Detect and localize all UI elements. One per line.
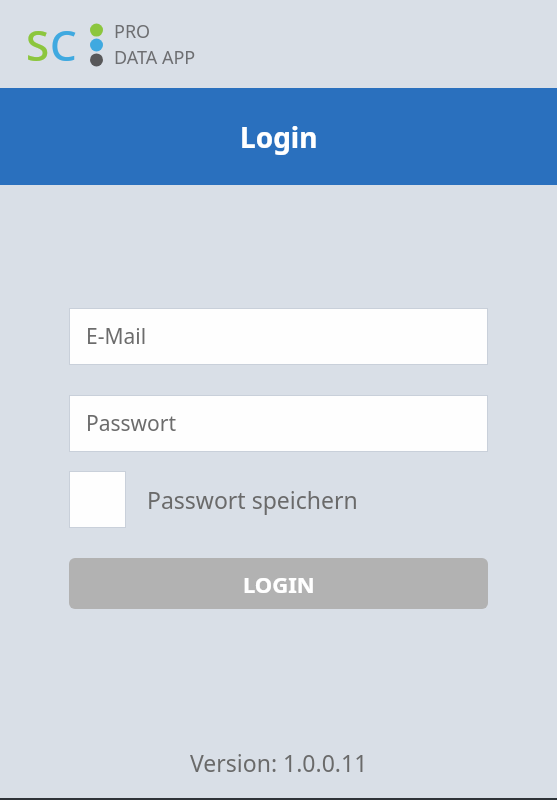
other: SC Pro Data App logo [26,16,196,73]
staticText: DATA APP [114,45,196,70]
button[interactable]: Passwort [69,395,488,452]
button[interactable]: LOGIN [69,558,488,609]
button[interactable]: Passwort speichern [69,471,358,528]
button[interactable]: E-Mail [69,308,488,365]
staticText: Version: 1.0.0.11 [190,747,368,778]
staticText: LOGIN [243,569,315,599]
staticText: Passwort speichern [147,484,358,515]
staticText: S [26,16,50,73]
staticText: Login [240,118,318,156]
staticText: PRO [114,19,151,44]
staticText: C [50,16,77,73]
staticText: Passwort [86,409,177,438]
staticText: E-Mail [86,322,147,351]
